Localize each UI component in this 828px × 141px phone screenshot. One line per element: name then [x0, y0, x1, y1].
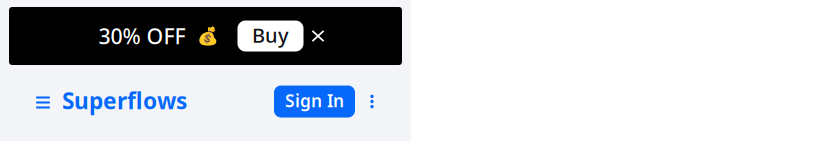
staticText: Buy: [252, 22, 289, 48]
staticText: 30% OFF: [98, 22, 185, 50]
button[interactable]: Buy: [237, 20, 303, 51]
button[interactable]: Menu: [26, 84, 60, 118]
staticText: Sign In: [285, 89, 344, 112]
staticText: Superflows: [62, 85, 187, 115]
button[interactable]: More options: [359, 86, 385, 117]
button[interactable]: Close: [303, 21, 336, 51]
button[interactable]: Superflows: [64, 86, 189, 116]
button[interactable]: Sign In: [274, 85, 355, 117]
staticText: 💰: [196, 26, 218, 46]
